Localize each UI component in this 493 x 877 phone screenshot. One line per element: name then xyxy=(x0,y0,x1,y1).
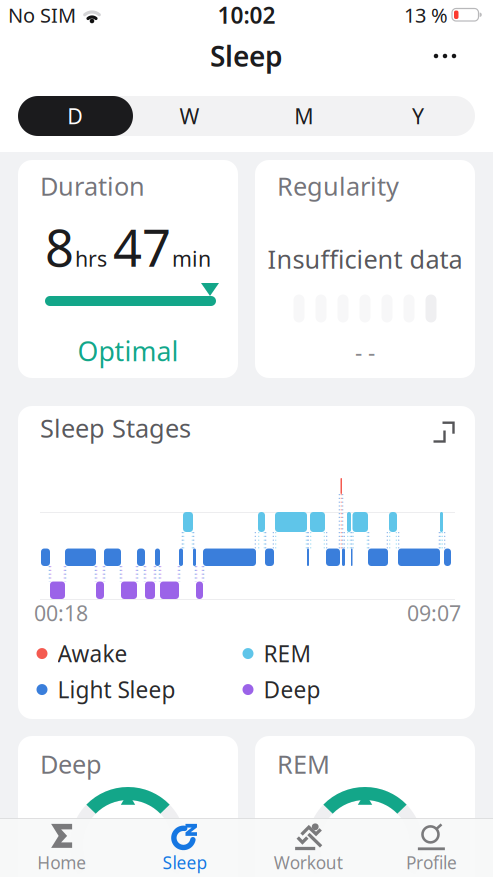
staticText: 09:07 xyxy=(407,599,461,627)
staticText: Sleep Stages xyxy=(40,411,191,445)
button[interactable]: Home xyxy=(0,822,123,874)
staticText: 13 % xyxy=(404,2,448,28)
staticText: 10:02 xyxy=(217,0,275,30)
staticText: Light Sleep xyxy=(57,674,175,705)
staticText: Duration xyxy=(40,169,145,203)
button[interactable]: Y xyxy=(361,96,475,136)
button[interactable]: Profile xyxy=(370,822,493,874)
staticText: min xyxy=(172,244,211,272)
button[interactable]: Expand xyxy=(421,409,466,454)
staticText: Workout xyxy=(274,851,343,874)
staticText: Awake xyxy=(57,638,127,669)
button[interactable]: M xyxy=(246,96,361,136)
staticText: hrs xyxy=(75,244,107,272)
button[interactable]: W xyxy=(132,96,246,136)
staticText: No SIM xyxy=(8,2,76,28)
staticText: Profile xyxy=(406,851,457,874)
staticText: REM xyxy=(263,638,311,669)
staticText: 47 xyxy=(113,213,171,281)
staticText: Deep xyxy=(40,747,102,781)
staticText: Home xyxy=(37,851,86,874)
staticText: W xyxy=(179,102,199,130)
staticText: REM xyxy=(277,747,330,781)
staticText: - - xyxy=(355,337,375,367)
staticText: Sleep xyxy=(210,37,283,75)
staticText: M xyxy=(294,102,313,130)
staticText: Regularity xyxy=(277,169,399,203)
staticText: Sleep xyxy=(162,851,207,874)
staticText: D xyxy=(67,102,83,130)
staticText: 00:18 xyxy=(34,599,88,627)
staticText: Insufficient data xyxy=(267,242,462,276)
staticText: Deep xyxy=(263,674,320,705)
staticText: 8 xyxy=(45,213,74,281)
staticText: Y xyxy=(412,102,424,130)
button[interactable]: D xyxy=(18,96,132,136)
button[interactable]: Sleep xyxy=(123,822,246,874)
button[interactable]: More xyxy=(423,41,467,71)
staticText: Optimal xyxy=(77,333,178,369)
button[interactable]: Workout xyxy=(246,822,370,874)
